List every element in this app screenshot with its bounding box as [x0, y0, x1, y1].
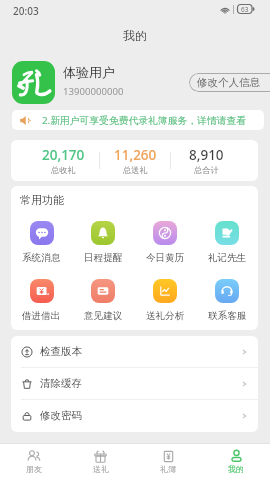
button[interactable]: 日程提醒	[72, 221, 134, 264]
staticText: 礼记先生	[208, 252, 247, 264]
staticText: 2.新用户可享受免费代录礼簿服务，详情请查看	[42, 114, 247, 127]
button[interactable]: 20,170	[25, 140, 101, 181]
staticText: 我的	[228, 464, 244, 474]
button[interactable]: 修改个人信息	[189, 73, 270, 92]
staticText: 总合计	[194, 165, 219, 175]
button[interactable]: 8,910	[168, 140, 244, 181]
staticText: 礼簿	[160, 464, 176, 474]
staticText: 检查版本	[40, 345, 82, 358]
staticText: 联系客服	[208, 310, 247, 322]
button[interactable]: 联系客服	[196, 279, 258, 322]
staticText: 朋友	[26, 464, 42, 474]
button[interactable]: 修改密码	[11, 400, 258, 431]
button[interactable]: 朋友	[0, 444, 67, 480]
staticText: 总送礼	[123, 165, 148, 175]
staticText: 20,170	[42, 146, 85, 164]
button[interactable]: 送礼	[67, 444, 134, 480]
staticText: 送礼	[93, 464, 109, 474]
staticText: 我的	[123, 28, 147, 43]
staticText: 清除缓存	[40, 377, 82, 390]
button[interactable]: 送礼分析	[134, 279, 196, 322]
staticText: 13900000000	[63, 85, 124, 98]
button[interactable]: 2.新用户可享受免费代录礼簿服务，详情请查看	[12, 110, 264, 130]
staticText: 修改密码	[40, 409, 82, 422]
staticText: 8,910	[189, 146, 224, 164]
staticText: 体验用户	[63, 64, 115, 80]
button[interactable]: 借进借出	[11, 279, 72, 322]
staticText: 意见建议	[84, 310, 123, 322]
staticText: 今日黄历	[146, 252, 185, 264]
button[interactable]: 礼记先生	[196, 221, 258, 264]
button[interactable]: 检查版本	[11, 336, 258, 367]
staticText: 常用功能	[20, 193, 64, 207]
button[interactable]: 意见建议	[72, 279, 134, 322]
staticText: 送礼分析	[146, 310, 185, 322]
button[interactable]: 11,260	[97, 140, 173, 181]
staticText: 借进借出	[22, 310, 61, 322]
staticText: 日程提醒	[84, 252, 123, 264]
button[interactable]: 头像	[12, 61, 55, 104]
staticText: 63	[241, 5, 249, 14]
button[interactable]: 系统消息	[11, 221, 72, 264]
button[interactable]: 礼簿	[134, 444, 202, 480]
staticText: 总收礼	[51, 165, 76, 175]
staticText: 系统消息	[22, 252, 61, 264]
staticText: 修改个人信息	[197, 76, 260, 89]
button[interactable]: 我的	[202, 444, 270, 480]
staticText: 11,260	[114, 146, 157, 164]
button[interactable]: 清除缓存	[11, 368, 258, 399]
button[interactable]: 今日黄历	[134, 221, 196, 264]
staticText: 20:03	[13, 4, 39, 18]
